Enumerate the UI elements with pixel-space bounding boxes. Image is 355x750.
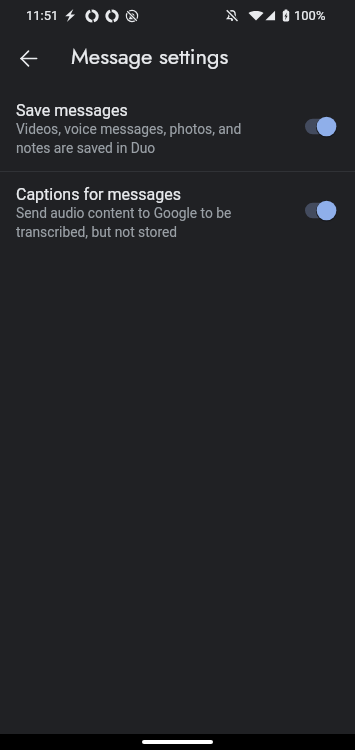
button[interactable]: Navigate up [10,40,46,76]
staticText: Captions for messages [16,185,181,204]
button[interactable]: On [305,200,337,221]
staticText: Videos, voice messages, photos, and note… [16,121,242,157]
staticText: Save messages [16,101,128,120]
staticText: Send audio content to Google to be trans… [16,205,232,241]
staticText: 100% [294,8,326,23]
button[interactable]: On [305,116,337,137]
button[interactable]: Captions for messages [0,172,355,255]
staticText: 11:51 [26,8,59,23]
button[interactable]: Save messages [0,88,355,171]
staticText: Message settings [71,40,229,72]
